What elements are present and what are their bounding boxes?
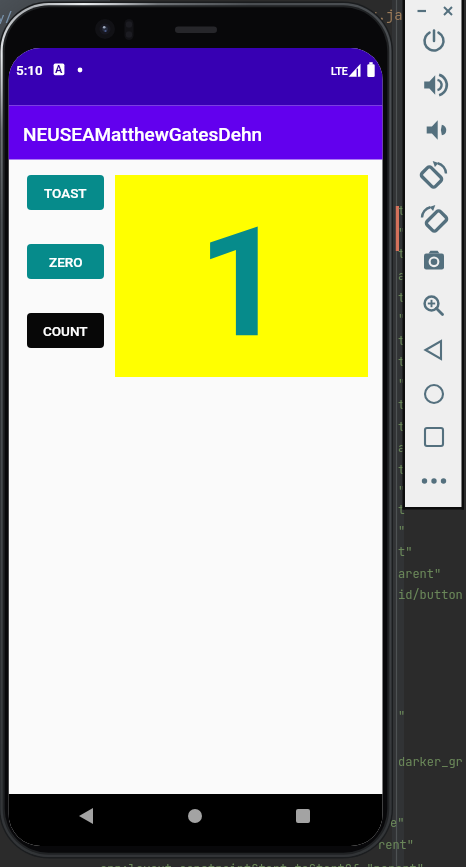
staticText: COUNT — [43, 323, 88, 339]
staticText: t" — [398, 290, 413, 306]
button[interactable]: Close — [438, 0, 460, 22]
staticText: id/button — [398, 587, 463, 603]
button[interactable]: Rotate left — [418, 204, 450, 236]
staticText: darker_gr — [398, 754, 463, 770]
staticText: " — [398, 708, 406, 724]
staticText: TOAST — [44, 185, 87, 201]
staticText: rent" — [378, 837, 415, 853]
staticText: a — [398, 440, 406, 456]
staticText: t" — [398, 354, 413, 370]
button[interactable]: More — [418, 467, 450, 499]
staticText: t" — [398, 502, 413, 518]
button[interactable]: Recent apps — [288, 801, 318, 831]
button[interactable]: Back — [71, 801, 101, 831]
staticText: " — [398, 225, 406, 241]
button[interactable]: Power — [418, 27, 450, 59]
staticText: " — [398, 376, 406, 392]
button[interactable]: Home — [418, 380, 450, 412]
staticText: a — [398, 268, 406, 284]
button[interactable]: Zoom — [418, 291, 450, 323]
staticText: ZERO — [49, 254, 83, 270]
staticText: arent" — [398, 566, 442, 582]
staticText: NEUSEAMatthewGatesDehn — [23, 123, 263, 145]
staticText: t" — [398, 544, 413, 560]
button[interactable]: Home — [180, 801, 210, 831]
staticText: " — [398, 523, 406, 539]
staticText: t" — [398, 246, 413, 262]
button[interactable]: Screenshot — [418, 247, 450, 279]
button[interactable]: ZERO — [27, 244, 104, 279]
button[interactable]: TOAST — [27, 175, 104, 210]
staticText: v.ja — [369, 6, 403, 24]
button[interactable]: COUNT — [27, 313, 104, 348]
staticText: t" — [398, 397, 413, 413]
button[interactable]: Volume up — [418, 71, 450, 103]
button[interactable]: Rotate right — [418, 160, 450, 192]
staticText: LTE — [331, 65, 348, 77]
staticText: t — [398, 333, 406, 349]
button[interactable]: Back — [418, 336, 450, 368]
staticText: t — [398, 419, 406, 435]
button[interactable] — [115, 175, 368, 377]
staticText: " — [398, 311, 406, 327]
staticText: app:layout_constraintStart_toStartOf "pa… — [100, 861, 425, 867]
staticText: y/ — [0, 9, 13, 26]
button[interactable]: Overview — [418, 423, 450, 455]
staticText: t" — [398, 462, 413, 478]
button[interactable]: Minimize — [412, 0, 434, 22]
staticText: t" — [398, 203, 413, 219]
staticText: " — [398, 483, 406, 499]
staticText: A — [55, 63, 63, 76]
staticText: e" — [390, 815, 405, 831]
button[interactable]: Volume down — [418, 116, 450, 148]
staticText: 5:10 — [16, 62, 43, 78]
